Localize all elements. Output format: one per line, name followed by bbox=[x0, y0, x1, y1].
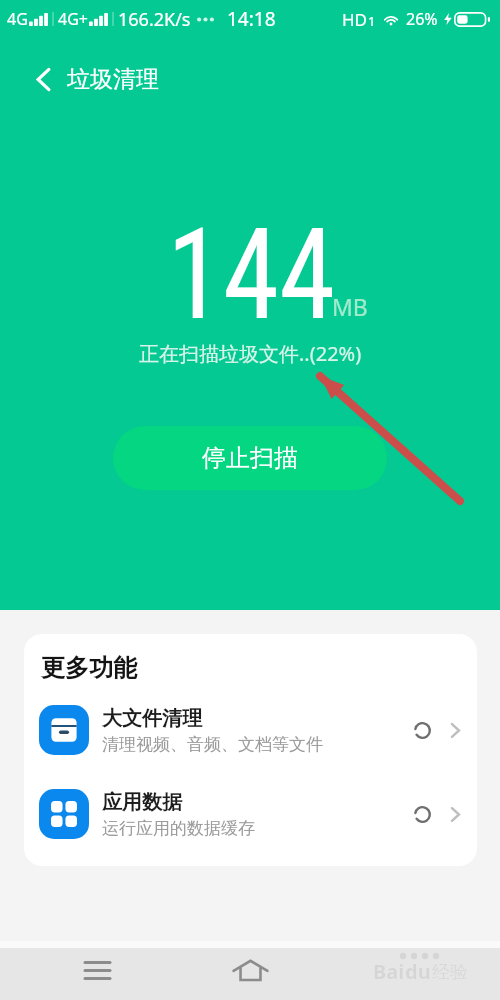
staticText: 停止扫描 bbox=[202, 443, 298, 473]
staticText: 大文件清理 bbox=[102, 706, 202, 731]
staticText: 经验 bbox=[432, 961, 468, 984]
staticText: 清理视频、音频、文档等文件 bbox=[102, 734, 323, 755]
staticText: 4G bbox=[7, 8, 28, 30]
staticText: 运行应用的数据缓存 bbox=[102, 818, 255, 839]
staticText: 正在扫描垃圾文件..(22%) bbox=[139, 340, 362, 367]
staticText: 垃圾清理 bbox=[67, 65, 159, 94]
button[interactable]: 停止扫描 bbox=[113, 426, 387, 490]
staticText: 1 bbox=[368, 12, 376, 30]
button[interactable]: Back bbox=[333, 941, 500, 1000]
staticText: Bai bbox=[373, 958, 405, 985]
button[interactable]: Recent apps bbox=[0, 941, 166, 1000]
staticText: 166.2K/s bbox=[118, 7, 191, 32]
button[interactable]: 应用数据 bbox=[24, 783, 477, 845]
staticText: 4G+ bbox=[58, 8, 88, 30]
staticText: 14:18 bbox=[227, 6, 276, 32]
button[interactable]: Home bbox=[166, 941, 333, 1000]
staticText: 更多功能 bbox=[41, 653, 137, 683]
staticText: HD bbox=[342, 8, 368, 31]
staticText: du bbox=[405, 958, 431, 985]
staticText: 144 bbox=[167, 200, 336, 349]
staticText: 应用数据 bbox=[102, 790, 182, 815]
button[interactable]: 大文件清理 bbox=[24, 699, 477, 761]
staticText: MB bbox=[332, 291, 368, 322]
staticText: 26% bbox=[406, 8, 438, 30]
button[interactable]: Back bbox=[0, 56, 67, 102]
